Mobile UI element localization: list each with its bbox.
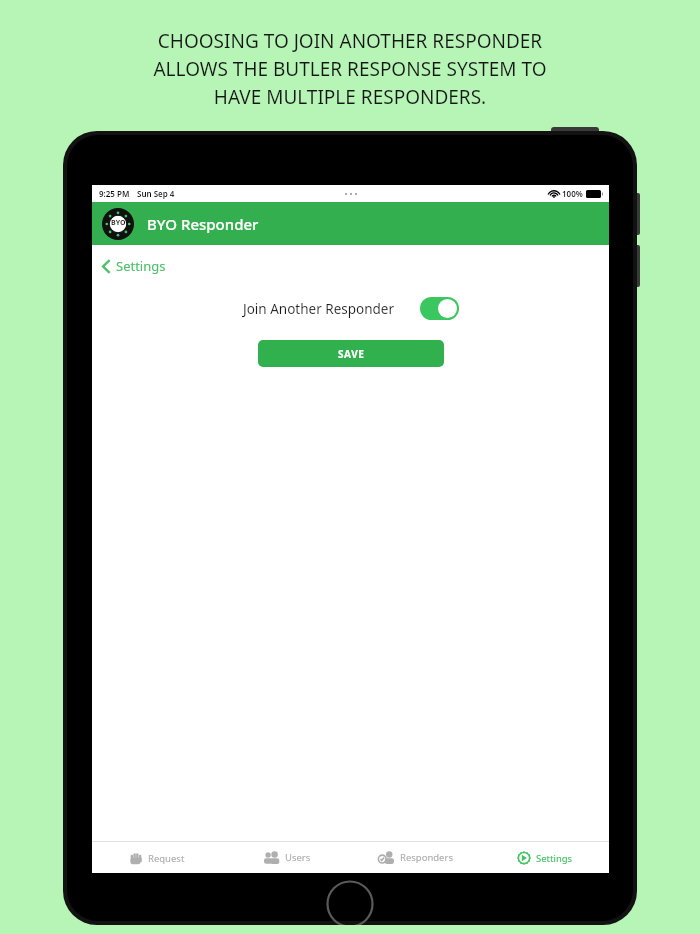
button[interactable]: SAVE — [258, 340, 444, 367]
staticText: Settings — [116, 257, 166, 275]
button[interactable]: Settings — [480, 851, 609, 865]
staticText: Settings — [536, 852, 573, 865]
staticText: Sun Sep 4 — [137, 188, 175, 199]
button[interactable]: Responders — [351, 851, 480, 864]
staticText: CHOOSING TO JOIN ANOTHER RESPONDER ALLOW… — [153, 28, 547, 110]
staticText: Join Another Responder — [243, 300, 395, 318]
staticText: Responders — [400, 851, 453, 864]
staticText: SAVE — [338, 347, 365, 361]
staticText: BYO Responder — [147, 214, 259, 234]
staticText: 9:25 PM — [99, 188, 130, 199]
staticText: Request — [148, 852, 185, 865]
button[interactable]: Users — [222, 851, 351, 864]
staticText: 100% — [562, 188, 583, 199]
button[interactable]: Settings — [102, 257, 166, 275]
staticText: BYO — [111, 218, 126, 228]
button[interactable]: Request — [92, 851, 222, 865]
staticText: Users — [285, 851, 311, 864]
button[interactable]: Home — [326, 880, 374, 925]
button[interactable]: Join Another Responder toggle — [420, 297, 459, 320]
other: BYO logo — [102, 208, 134, 240]
